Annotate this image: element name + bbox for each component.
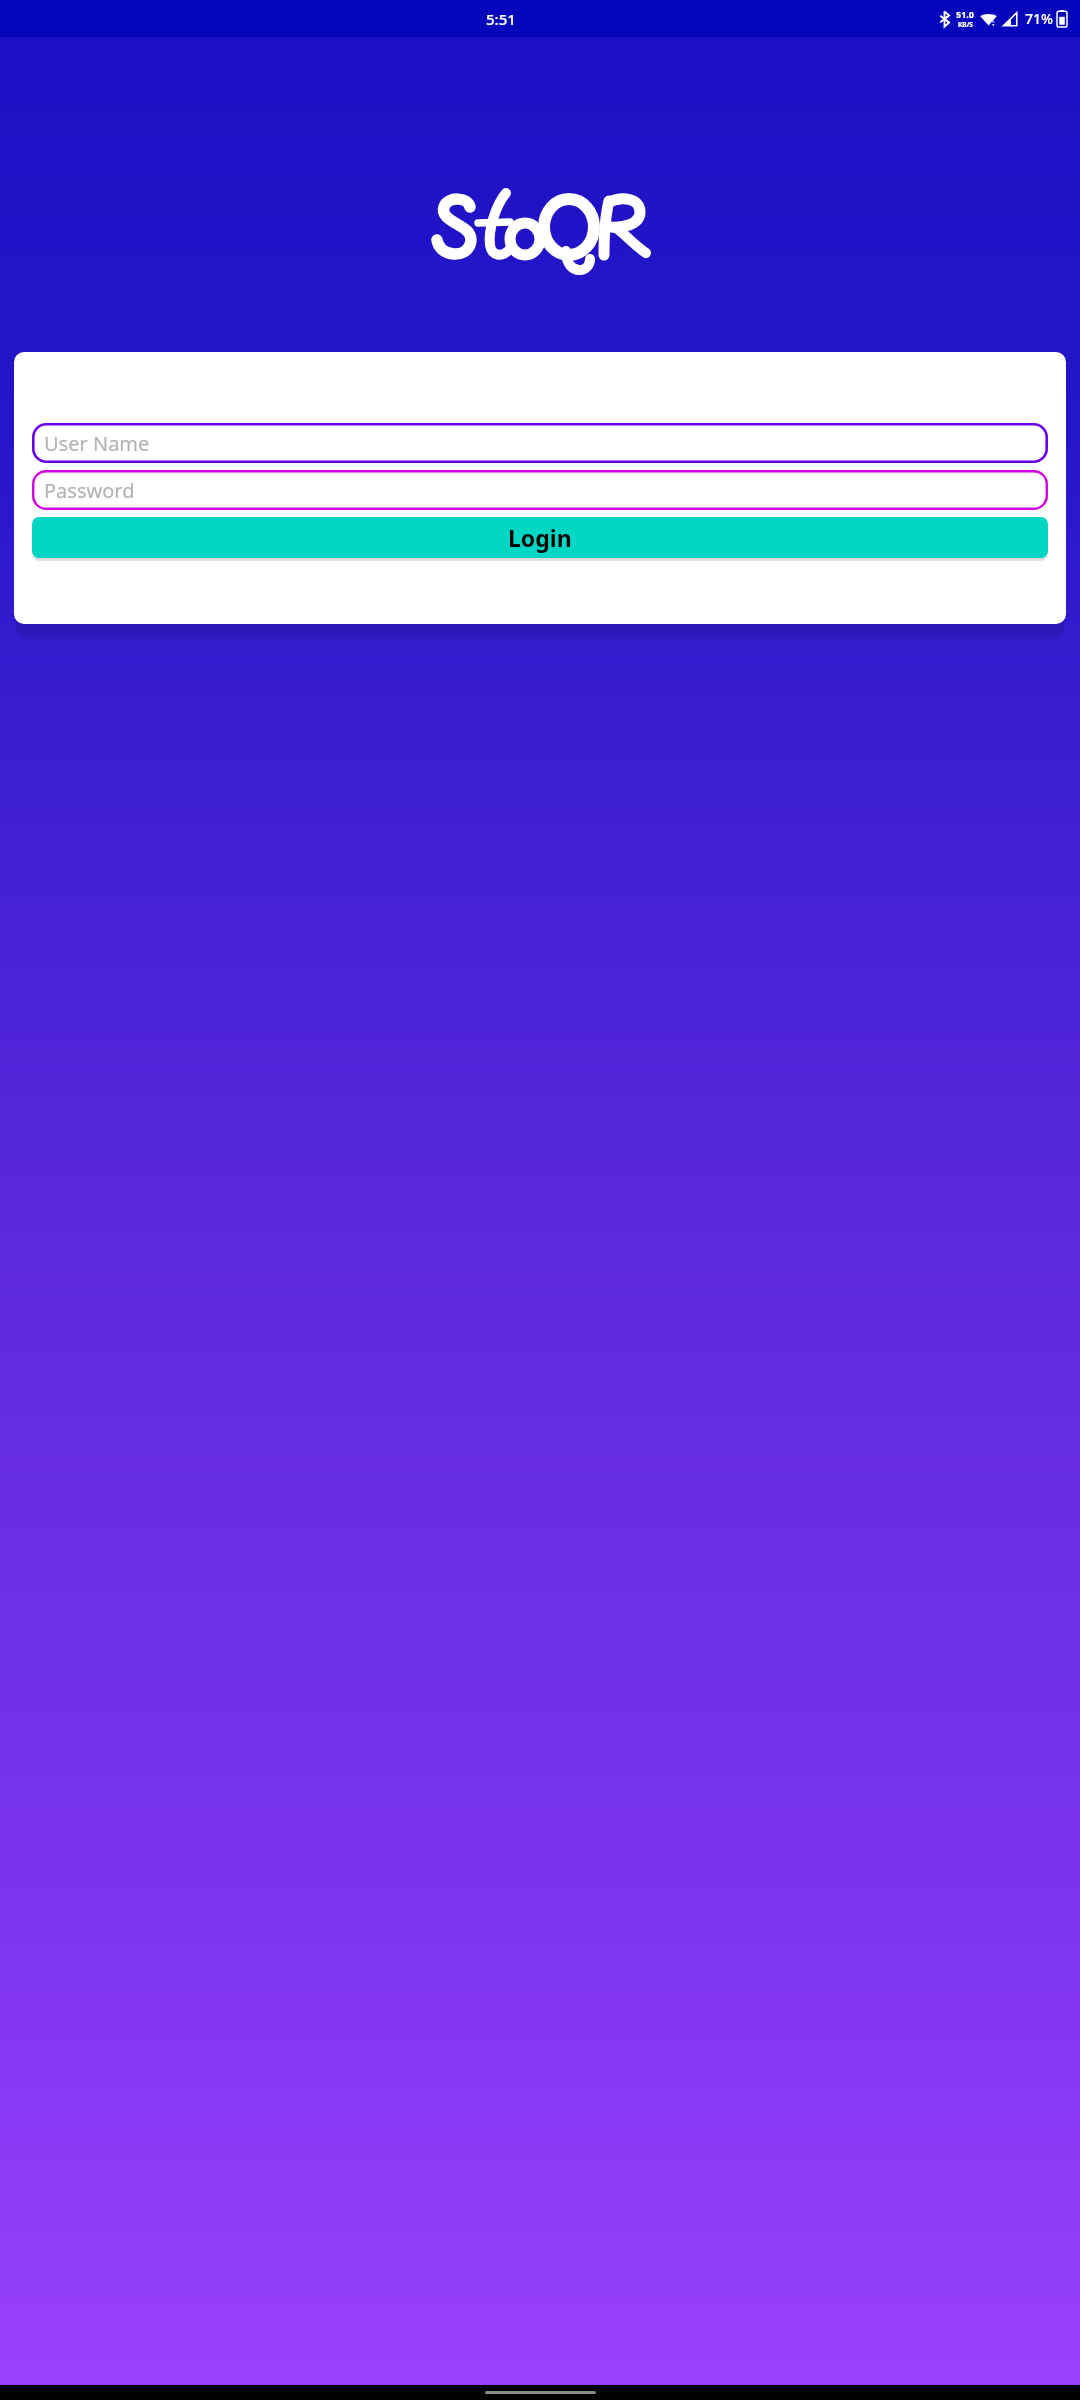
staticText: Password — [44, 477, 135, 504]
button[interactable]: Password — [32, 470, 1048, 510]
button[interactable]: Login — [32, 517, 1048, 558]
staticText: Login — [508, 522, 572, 553]
staticText: 5:51 — [486, 9, 516, 29]
staticText: 71% — [1025, 9, 1053, 28]
staticText: KB/S — [958, 20, 973, 29]
staticText: 51.0 — [956, 8, 974, 20]
staticText: User Name — [44, 430, 150, 457]
button[interactable]: User Name — [32, 423, 1048, 463]
